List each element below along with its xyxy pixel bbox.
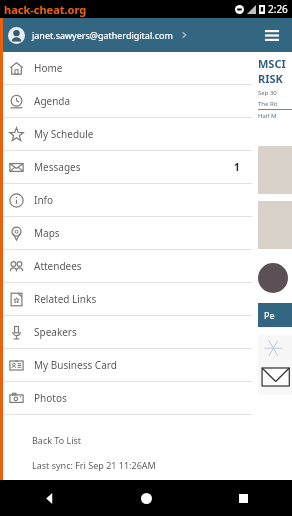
button[interactable]: Back To List [0, 429, 252, 451]
button[interactable]: Recent apps [195, 480, 292, 516]
button[interactable]: Home [0, 52, 252, 84]
staticText: Attendees [34, 259, 82, 273]
staticText: RISK [258, 71, 283, 86]
button[interactable]: Agenda [0, 85, 252, 117]
button[interactable]: Pe [258, 303, 292, 327]
button[interactable]: Info [0, 184, 252, 216]
button[interactable]: Photos [0, 382, 252, 414]
button[interactable]: Back [0, 480, 98, 516]
button[interactable]: janet.sawyers@gatherdigital.com [0, 18, 252, 52]
button[interactable]: Messages [0, 151, 252, 183]
button[interactable]: Related Links [0, 283, 252, 315]
staticText: janet.sawyers@gatherdigital.com [32, 29, 173, 41]
staticText: Speakers [34, 325, 77, 339]
button[interactable]: Open navigation menu [252, 18, 292, 52]
staticText: Sep 30 [258, 89, 277, 97]
staticText: Messages [34, 160, 81, 174]
staticText: Last sync: Fri Sep 21 11:26AM [32, 459, 156, 471]
staticText: The Rit [258, 100, 278, 108]
staticText: 2:26 [268, 2, 288, 16]
button[interactable]: Maps [0, 217, 252, 249]
button[interactable]: Home [98, 480, 195, 516]
staticText: Half M [258, 112, 277, 120]
other: Account options [179, 30, 189, 40]
staticText: Back To List [32, 434, 82, 446]
staticText: 1 [234, 160, 240, 174]
staticText: Pe [264, 309, 275, 321]
staticText: hack-cheat.org [4, 2, 87, 17]
button[interactable]: Attendees [0, 250, 252, 282]
staticText: Photos [34, 391, 67, 405]
staticText: Home [34, 61, 63, 75]
staticText: Agenda [34, 94, 71, 108]
staticText: My Schedule [34, 127, 94, 141]
staticText: Info [34, 193, 54, 207]
button[interactable]: My Business Card [0, 349, 252, 381]
button[interactable]: Speakers [0, 316, 252, 348]
staticText: MSCI [258, 56, 286, 71]
button[interactable]: My Schedule [0, 118, 252, 150]
staticText: Related Links [34, 292, 97, 306]
staticText: My Business Card [34, 358, 117, 372]
staticText: Maps [34, 226, 60, 240]
